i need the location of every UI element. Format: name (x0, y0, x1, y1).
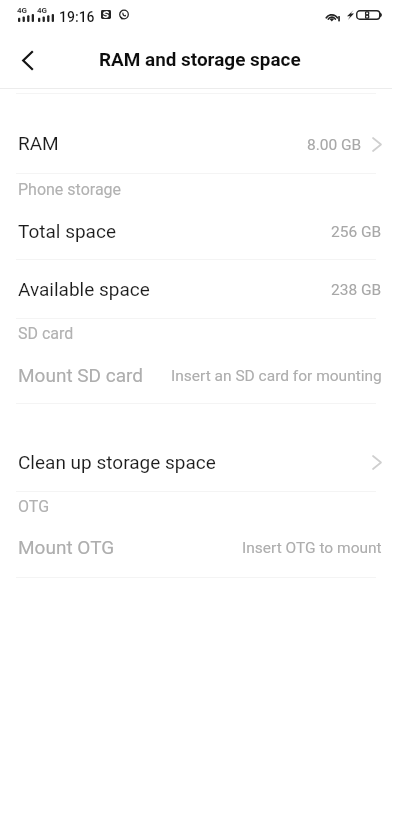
staticText: Mount OTG (18, 536, 115, 558)
staticText: SD card (18, 324, 74, 343)
staticText: OTG (18, 497, 50, 516)
button[interactable]: RAM (0, 112, 400, 173)
button[interactable]: Mount OTG (0, 517, 400, 577)
button[interactable]: Total space (0, 202, 400, 259)
staticText: RAM (18, 132, 59, 154)
staticText: Available space (18, 278, 150, 300)
button[interactable]: Back (3, 38, 51, 86)
staticText: Phone storage (18, 180, 122, 199)
staticText: RAM and storage space (99, 48, 301, 70)
staticText: 4G (17, 6, 28, 15)
staticText: Total space (18, 220, 116, 242)
staticText: 8.00 GB (307, 136, 362, 154)
staticText: 4G (37, 6, 48, 15)
button[interactable]: Mount SD card (0, 346, 400, 403)
staticText: Insert OTG to mount (242, 539, 382, 557)
staticText: 256 GB (331, 223, 382, 241)
button[interactable]: Available space (0, 259, 400, 318)
button[interactable]: Clean up storage space (0, 433, 400, 491)
staticText: 238 GB (331, 281, 382, 299)
staticText: Mount SD card (18, 364, 144, 386)
staticText: Insert an SD card for mounting (171, 367, 382, 385)
staticText: 19:16 (59, 9, 95, 25)
staticText: Clean up storage space (18, 451, 216, 473)
